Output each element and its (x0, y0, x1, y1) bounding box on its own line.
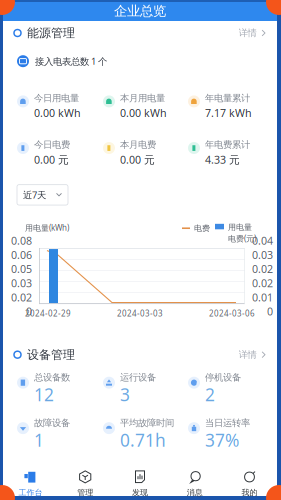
staticText: 发现 (132, 488, 148, 497)
staticText: 0.03 (252, 248, 273, 262)
staticText: 年电费累计 (205, 139, 250, 150)
staticText: 4.33 元 (205, 152, 240, 167)
staticText: 设备管理 (27, 347, 75, 362)
staticText: 0 (267, 304, 273, 319)
staticText: 0 (26, 304, 32, 319)
staticText: 0.02 (11, 290, 32, 304)
staticText: 37% (205, 429, 239, 452)
button[interactable]: 消息 (167, 461, 222, 497)
button[interactable]: 近7天 (17, 185, 68, 205)
staticText: 0.00 元 (34, 152, 69, 167)
staticText: 平均故障时间 (120, 417, 174, 429)
button[interactable]: 详情 (238, 25, 266, 41)
staticText: 管理 (77, 488, 93, 497)
staticText: 今日用电量 (34, 92, 79, 104)
staticText: 2024-03-03 (117, 308, 163, 319)
staticText: 0.02 (252, 276, 273, 290)
staticText: 电费(元) (228, 233, 256, 244)
staticText: 停机设备 (205, 372, 241, 383)
staticText: 0.06 (11, 248, 32, 262)
staticText: 7.17 kWh (205, 106, 252, 120)
staticText: 总设备数 (34, 372, 70, 383)
staticText: 0.00 元 (120, 152, 155, 167)
staticText: 当日运转率 (205, 417, 250, 429)
staticText: 本月用电量 (120, 92, 165, 104)
staticText: 0.03 (11, 276, 32, 290)
staticText: 0.71h (120, 429, 166, 452)
staticText: 2024-02-29 (25, 308, 71, 319)
button[interactable]: 发现 (113, 461, 167, 497)
staticText: 故障设备 (34, 417, 70, 429)
staticText: 我的 (242, 488, 258, 497)
staticText: 0.00 kWh (120, 106, 167, 120)
staticText: 0.05 (11, 262, 32, 276)
staticText: 电费 (194, 223, 210, 233)
staticText: 用电量(kWh) (25, 222, 69, 233)
staticText: 0.00 kWh (34, 106, 81, 120)
button[interactable]: 详情 (238, 347, 266, 362)
staticText: 0.02 (252, 262, 273, 276)
button[interactable]: 管理 (58, 461, 113, 497)
staticText: 接入电表总数 1 个 (35, 55, 107, 67)
staticText: 3 (120, 383, 130, 406)
staticText: 2024-03-06 (209, 308, 255, 319)
staticText: 2 (205, 383, 215, 406)
staticText: 0.01 (252, 290, 273, 304)
staticText: 近7天 (23, 189, 46, 201)
staticText: 0.04 (252, 233, 273, 248)
staticText: 今日电费 (34, 139, 70, 150)
staticText: 本月电费 (120, 139, 156, 150)
button[interactable]: 工作台 (3, 461, 58, 497)
staticText: 消息 (187, 488, 203, 497)
staticText: 年电量累计 (205, 92, 250, 104)
staticText: 运行设备 (120, 372, 156, 383)
staticText: 0.08 (11, 233, 32, 248)
staticText: 能源管理 (27, 26, 75, 40)
staticText: 12 (34, 383, 54, 406)
staticText: 企业总览 (114, 3, 166, 19)
staticText: 工作台 (18, 488, 42, 497)
staticText: 1 (34, 429, 44, 452)
staticText: 详情 (238, 349, 256, 360)
button[interactable]: 我的 (222, 461, 277, 497)
staticText: 详情 (238, 27, 256, 39)
staticText: 用电量 (228, 222, 252, 232)
